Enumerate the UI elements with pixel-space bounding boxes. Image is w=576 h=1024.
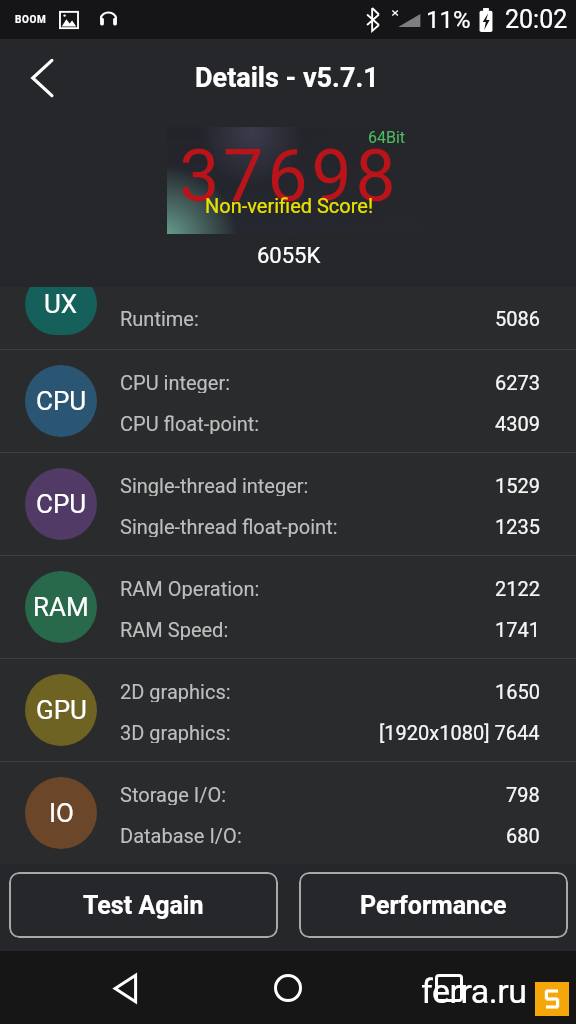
staticText: CPU <box>36 489 87 519</box>
staticText: Single-thread integer: <box>120 474 309 496</box>
staticText: GPU <box>36 695 87 725</box>
button[interactable]: Recents <box>419 958 479 1018</box>
staticText: 2122 <box>495 577 540 599</box>
button[interactable]: CPU <box>0 350 576 452</box>
staticText: CPU float-point: <box>120 412 260 434</box>
staticText: [1920x1080] 7644 <box>379 721 540 743</box>
staticText: Storage I/O: <box>120 783 226 805</box>
staticText: 5086 <box>495 307 540 329</box>
staticText: Non-verified Score! <box>205 194 374 217</box>
staticText: Test Again <box>83 891 204 920</box>
staticText: Runtime: <box>120 307 199 329</box>
staticText: 64Bit <box>368 128 406 147</box>
staticText: 1741 <box>495 618 540 640</box>
staticText: Details - v5.7.1 <box>195 62 379 94</box>
staticText: RAM Operation: <box>120 577 260 599</box>
staticText: 6273 <box>495 371 540 393</box>
button[interactable]: Back <box>18 54 66 102</box>
staticText: RAM <box>33 592 89 622</box>
staticText: 20:02 <box>505 5 568 34</box>
staticText: 680 <box>506 824 540 846</box>
button[interactable]: IO <box>0 762 576 864</box>
button[interactable]: Test Again <box>9 872 278 938</box>
staticText: ferra.ru <box>421 971 527 1011</box>
staticText: 3D graphics: <box>120 721 231 743</box>
staticText: 2D graphics: <box>120 680 231 702</box>
staticText: Database I/O: <box>120 824 242 846</box>
staticText: Performance <box>360 891 507 920</box>
staticText: 37698 <box>179 134 400 218</box>
button[interactable]: CPU <box>0 453 576 555</box>
staticText: BOOM <box>15 14 47 26</box>
staticText: UX <box>44 289 78 319</box>
button[interactable]: UX <box>0 287 576 349</box>
button[interactable]: GPU <box>0 659 576 761</box>
staticText: 11% <box>426 6 471 34</box>
staticText: CPU <box>36 386 87 416</box>
button[interactable]: Performance <box>299 872 568 938</box>
button[interactable]: Home <box>258 958 318 1018</box>
staticText: CPU integer: <box>120 371 231 393</box>
staticText: Single-thread float-point: <box>120 515 338 537</box>
button[interactable]: Back <box>96 958 156 1018</box>
staticText: IO <box>49 798 74 828</box>
staticText: 1529 <box>495 474 540 496</box>
button[interactable]: RAM <box>0 556 576 658</box>
staticText: 4309 <box>495 412 540 434</box>
staticText: 798 <box>506 783 540 805</box>
staticText: 1650 <box>495 680 540 702</box>
staticText: RAM Speed: <box>120 618 229 640</box>
staticText: 6055K <box>257 243 321 269</box>
staticText: 1235 <box>495 515 540 537</box>
